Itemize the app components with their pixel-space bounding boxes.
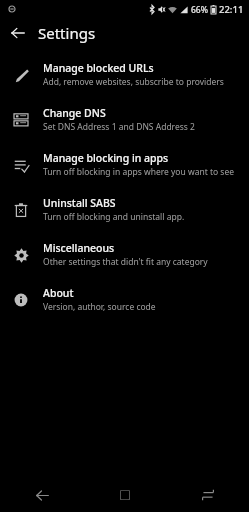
staticText: About xyxy=(43,286,74,300)
staticText: Set DNS Address 1 and DNS Address 2 xyxy=(43,121,195,133)
staticText: Version, author, source code xyxy=(43,301,156,313)
staticText: 66% xyxy=(191,4,208,16)
button[interactable]: Back xyxy=(22,478,62,512)
button[interactable]: Back xyxy=(6,18,30,48)
staticText: 22:11 xyxy=(219,3,244,16)
button[interactable]: Change DNS xyxy=(0,97,249,142)
staticText: Add, remove websites, subscribe to provi… xyxy=(43,76,224,88)
button[interactable]: Home xyxy=(105,478,145,512)
staticText: Manage blocked URLs xyxy=(43,61,154,75)
button[interactable]: Manage blocking in apps xyxy=(0,142,249,187)
staticText: Settings xyxy=(38,23,96,43)
staticText: Uninstall SABS xyxy=(43,196,116,210)
staticText: Miscellaneous xyxy=(43,241,115,255)
staticText: Turn off blocking in apps where you want… xyxy=(43,166,241,178)
button[interactable]: Recents xyxy=(188,478,228,512)
staticText: Change DNS xyxy=(43,106,106,120)
button[interactable]: Uninstall SABS xyxy=(0,187,249,232)
button[interactable]: Miscellaneous xyxy=(0,232,249,277)
staticText: Manage blocking in apps xyxy=(43,151,169,165)
staticText: Other settings that didn't fit any categ… xyxy=(43,256,208,268)
button[interactable]: About xyxy=(0,277,249,322)
staticText: Turn off blocking and uninstall app. xyxy=(43,211,185,223)
button[interactable]: Manage blocked URLs xyxy=(0,52,249,97)
